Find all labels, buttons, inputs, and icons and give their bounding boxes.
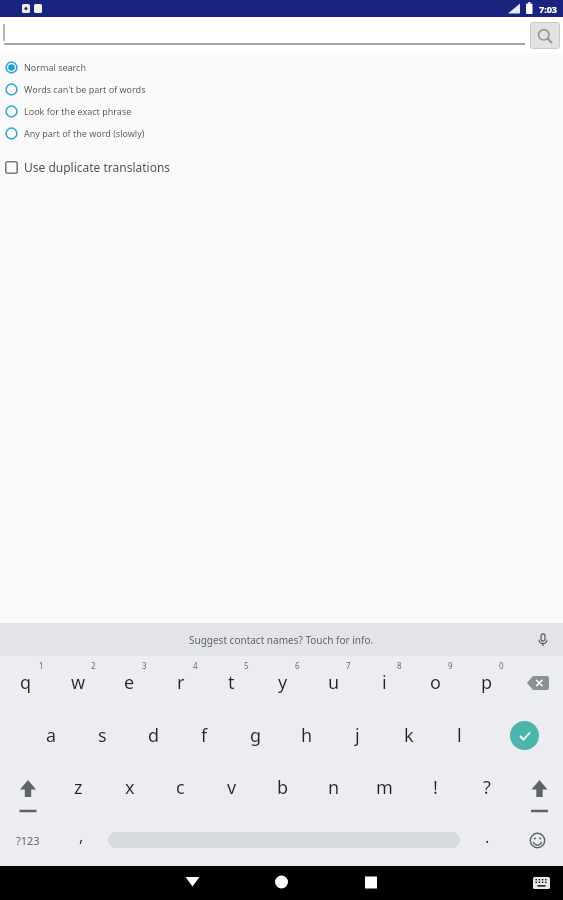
staticText: l [457, 723, 462, 748]
button[interactable]: 2 [52, 656, 104, 709]
button[interactable]: Normal search [0, 56, 563, 78]
button[interactable]: s [77, 709, 128, 761]
button[interactable]: a [26, 709, 77, 761]
staticText: p [481, 670, 493, 695]
staticText: 6 [295, 660, 300, 671]
button[interactable]: 0 [461, 656, 512, 709]
staticText: f [201, 723, 208, 748]
staticText: 4 [193, 660, 198, 671]
button[interactable] [187, 866, 375, 900]
staticText: 9 [448, 660, 453, 671]
staticText: ! [433, 775, 438, 800]
staticText: Look for the exact phrase [24, 105, 132, 117]
button[interactable] [0, 866, 187, 900]
staticText: c [176, 775, 185, 800]
button[interactable]: 9 [410, 656, 461, 709]
staticText: 8 [397, 660, 402, 671]
button[interactable]: 3 [104, 656, 155, 709]
staticText: e [124, 670, 135, 695]
button[interactable]: b [257, 761, 308, 814]
button[interactable]: 1 [0, 656, 52, 709]
staticText: 7:03 [539, 3, 557, 15]
staticText: v [227, 775, 237, 800]
staticText: 3 [142, 660, 147, 671]
button[interactable]: . [462, 814, 512, 866]
button[interactable]: x [104, 761, 155, 814]
staticText: w [71, 670, 86, 695]
staticText: j [355, 723, 360, 748]
staticText: b [277, 775, 289, 800]
button[interactable] [512, 761, 563, 814]
staticText: u [328, 670, 340, 695]
staticText: r [177, 670, 185, 695]
staticText: , [79, 825, 84, 847]
button[interactable]: Words can't be part of words [0, 78, 563, 100]
button[interactable] [512, 656, 563, 709]
staticText: g [250, 723, 262, 748]
staticText: ?123 [16, 833, 40, 848]
staticText: Use duplicate translations [24, 159, 171, 175]
staticText: 5 [244, 660, 249, 671]
button[interactable]: k [383, 709, 434, 761]
staticText: o [430, 670, 441, 695]
staticText: i [382, 670, 387, 695]
button[interactable]: Look for the exact phrase [0, 100, 563, 122]
staticText: n [328, 775, 340, 800]
button[interactable] [106, 814, 462, 866]
button[interactable]: 8 [359, 656, 410, 709]
button[interactable]: Suggest contact names? Touch for info. [189, 633, 374, 647]
button[interactable] [0, 761, 52, 814]
button[interactable]: d [128, 709, 179, 761]
button[interactable]: c [155, 761, 206, 814]
staticText: Normal search [24, 61, 86, 73]
staticText: t [228, 670, 235, 695]
staticText: q [20, 670, 32, 695]
staticText: 7 [346, 660, 351, 671]
button[interactable]: Any part of the word (slowly) [0, 122, 563, 144]
staticText: ? [483, 775, 491, 800]
button[interactable] [530, 22, 560, 49]
staticText: 2 [91, 660, 96, 671]
button[interactable]: 5 [206, 656, 257, 709]
button[interactable]: g [230, 709, 281, 761]
button[interactable]: 4 [155, 656, 206, 709]
staticText: h [301, 723, 313, 748]
button[interactable]: j [332, 709, 383, 761]
staticText: 1 [39, 660, 44, 671]
button[interactable]: z [52, 761, 104, 814]
staticText: k [404, 723, 414, 748]
button[interactable]: n [308, 761, 359, 814]
staticText: a [46, 723, 57, 748]
staticText: d [148, 723, 160, 748]
button[interactable]: 6 [257, 656, 308, 709]
staticText: . [485, 826, 490, 848]
button[interactable]: ! [410, 761, 461, 814]
button[interactable] [510, 721, 539, 750]
staticText: m [376, 775, 393, 800]
button[interactable]: 7 [308, 656, 359, 709]
button[interactable] [375, 866, 563, 900]
button[interactable]: Use duplicate translations [0, 156, 563, 178]
button[interactable] [536, 633, 550, 647]
button[interactable]: h [281, 709, 332, 761]
button[interactable]: ? [461, 761, 512, 814]
staticText: s [98, 723, 107, 748]
staticText: x [125, 775, 135, 800]
button[interactable]: l [434, 709, 485, 761]
staticText: Any part of the word (slowly) [24, 127, 145, 139]
staticText: 0 [499, 660, 504, 671]
button[interactable]: ?123 [0, 814, 56, 866]
button[interactable]: v [206, 761, 257, 814]
button[interactable]: , [56, 814, 106, 866]
button[interactable]: m [359, 761, 410, 814]
staticText: Words can't be part of words [24, 83, 146, 95]
button[interactable] [512, 814, 563, 866]
staticText: y [278, 670, 288, 695]
staticText: z [74, 775, 83, 800]
button[interactable]: f [179, 709, 230, 761]
